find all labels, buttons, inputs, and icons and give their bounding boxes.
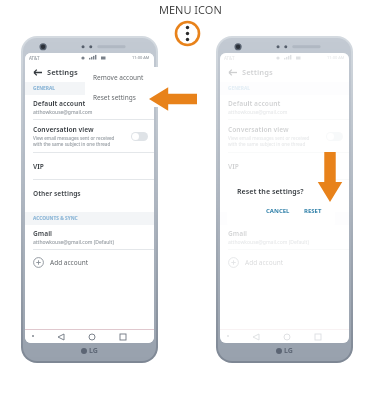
button[interactable]: Back bbox=[55, 331, 66, 342]
staticText: atthowkouse@gmail.com (Default) bbox=[228, 239, 309, 246]
button[interactable]: RESET bbox=[299, 205, 327, 217]
button[interactable]: Back bbox=[250, 331, 261, 342]
staticText: Reset settings bbox=[93, 93, 136, 102]
staticText: VIP bbox=[228, 162, 239, 171]
button[interactable]: Back bbox=[225, 65, 239, 79]
staticText: with the same subject in one thread bbox=[228, 141, 306, 147]
button[interactable]: Add account bbox=[220, 250, 349, 274]
staticText: 11:00 AM bbox=[132, 55, 150, 60]
staticText: with the same subject in one thread bbox=[33, 141, 111, 147]
button[interactable]: Other settings bbox=[25, 180, 154, 206]
button[interactable]: Gmail bbox=[25, 225, 154, 249]
staticText: Settings bbox=[242, 67, 273, 77]
staticText: MENU ICON bbox=[159, 2, 222, 17]
button[interactable]: Conversation view toggle bbox=[326, 132, 343, 141]
staticText: ACCOUNTS & SYNC bbox=[33, 215, 78, 222]
staticText: AT&T bbox=[224, 55, 235, 61]
staticText: Remove account bbox=[93, 73, 144, 82]
staticText: Settings bbox=[47, 67, 78, 77]
staticText: atthowkouse@gmail.com (Default) bbox=[33, 239, 114, 246]
staticText: Default account bbox=[228, 99, 281, 108]
button[interactable]: Recents bbox=[117, 331, 128, 342]
staticText: Conversation view bbox=[33, 125, 94, 134]
button[interactable]: VIP bbox=[220, 153, 349, 179]
staticText: RESET bbox=[304, 207, 322, 215]
staticText: View email messages sent or received bbox=[228, 135, 310, 141]
button[interactable]: Menu bbox=[174, 20, 201, 47]
button[interactable]: Reset settings bbox=[85, 87, 160, 107]
button[interactable]: Conversation view bbox=[220, 120, 349, 152]
staticText: Other settings bbox=[33, 189, 81, 198]
button[interactable]: Other settings bbox=[220, 180, 349, 206]
staticText: Reset the settings? bbox=[237, 187, 304, 197]
staticText: AT&T bbox=[29, 55, 40, 61]
button[interactable]: Conversation view bbox=[25, 120, 154, 152]
button[interactable]: Default account bbox=[25, 95, 154, 119]
staticText: Conversation view bbox=[228, 125, 289, 134]
staticText: Default account bbox=[33, 99, 86, 108]
button[interactable]: Add account bbox=[25, 250, 154, 274]
button[interactable]: Gmail bbox=[220, 225, 349, 249]
staticText: LG bbox=[89, 346, 98, 356]
staticText: Other settings bbox=[228, 189, 276, 198]
button[interactable]: VIP bbox=[25, 153, 154, 179]
staticText: Add account bbox=[245, 258, 284, 267]
button[interactable]: Remove account bbox=[85, 67, 160, 87]
button[interactable]: Default account bbox=[220, 95, 349, 119]
staticText: GENERAL bbox=[228, 85, 250, 92]
button[interactable]: Home bbox=[86, 331, 97, 342]
staticText: LG bbox=[284, 346, 293, 356]
button[interactable]: Home bbox=[281, 331, 292, 342]
staticText: atthowkouse@gmail.com bbox=[33, 109, 93, 116]
staticText: VIP bbox=[33, 162, 44, 171]
staticText: 11:00 AM bbox=[327, 55, 345, 60]
staticText: View email messages sent or received bbox=[33, 135, 115, 141]
button[interactable]: Recents bbox=[312, 331, 323, 342]
staticText: GENERAL bbox=[33, 85, 55, 92]
staticText: Gmail bbox=[228, 229, 248, 238]
staticText: Gmail bbox=[33, 229, 53, 238]
button[interactable]: CANCEL bbox=[261, 205, 295, 217]
button[interactable]: Conversation view toggle bbox=[131, 132, 148, 141]
staticText: atthowkouse@gmail.com bbox=[228, 109, 288, 116]
button[interactable]: Back bbox=[30, 65, 44, 79]
staticText: Add account bbox=[50, 258, 89, 267]
staticText: CANCEL bbox=[266, 207, 290, 215]
